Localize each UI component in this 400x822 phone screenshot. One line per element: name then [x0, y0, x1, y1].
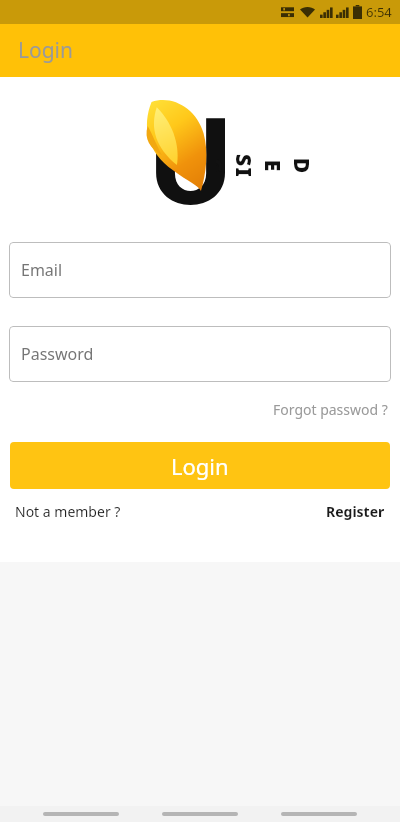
staticText: Login — [171, 451, 229, 481]
button[interactable]: Forgot passwod ? — [269, 396, 392, 423]
staticText: DESIGN — [216, 153, 316, 179]
staticText: Forgot passwod ? — [273, 400, 388, 419]
button[interactable]: Back — [281, 807, 357, 821]
staticText: Not a member ? — [15, 502, 121, 521]
staticText: Login — [18, 36, 74, 65]
staticText: Register — [326, 502, 385, 521]
staticText: Password — [21, 343, 94, 365]
button[interactable]: Password — [9, 326, 391, 382]
button[interactable]: Register — [326, 502, 385, 521]
button[interactable]: Recents — [43, 807, 119, 821]
staticText: 6:54 — [366, 3, 392, 21]
staticText: Email — [21, 259, 63, 281]
button[interactable]: Home — [162, 807, 238, 821]
button[interactable]: Login — [10, 442, 390, 489]
button[interactable]: Not a member ? — [15, 502, 121, 521]
button[interactable]: Email — [9, 242, 391, 298]
